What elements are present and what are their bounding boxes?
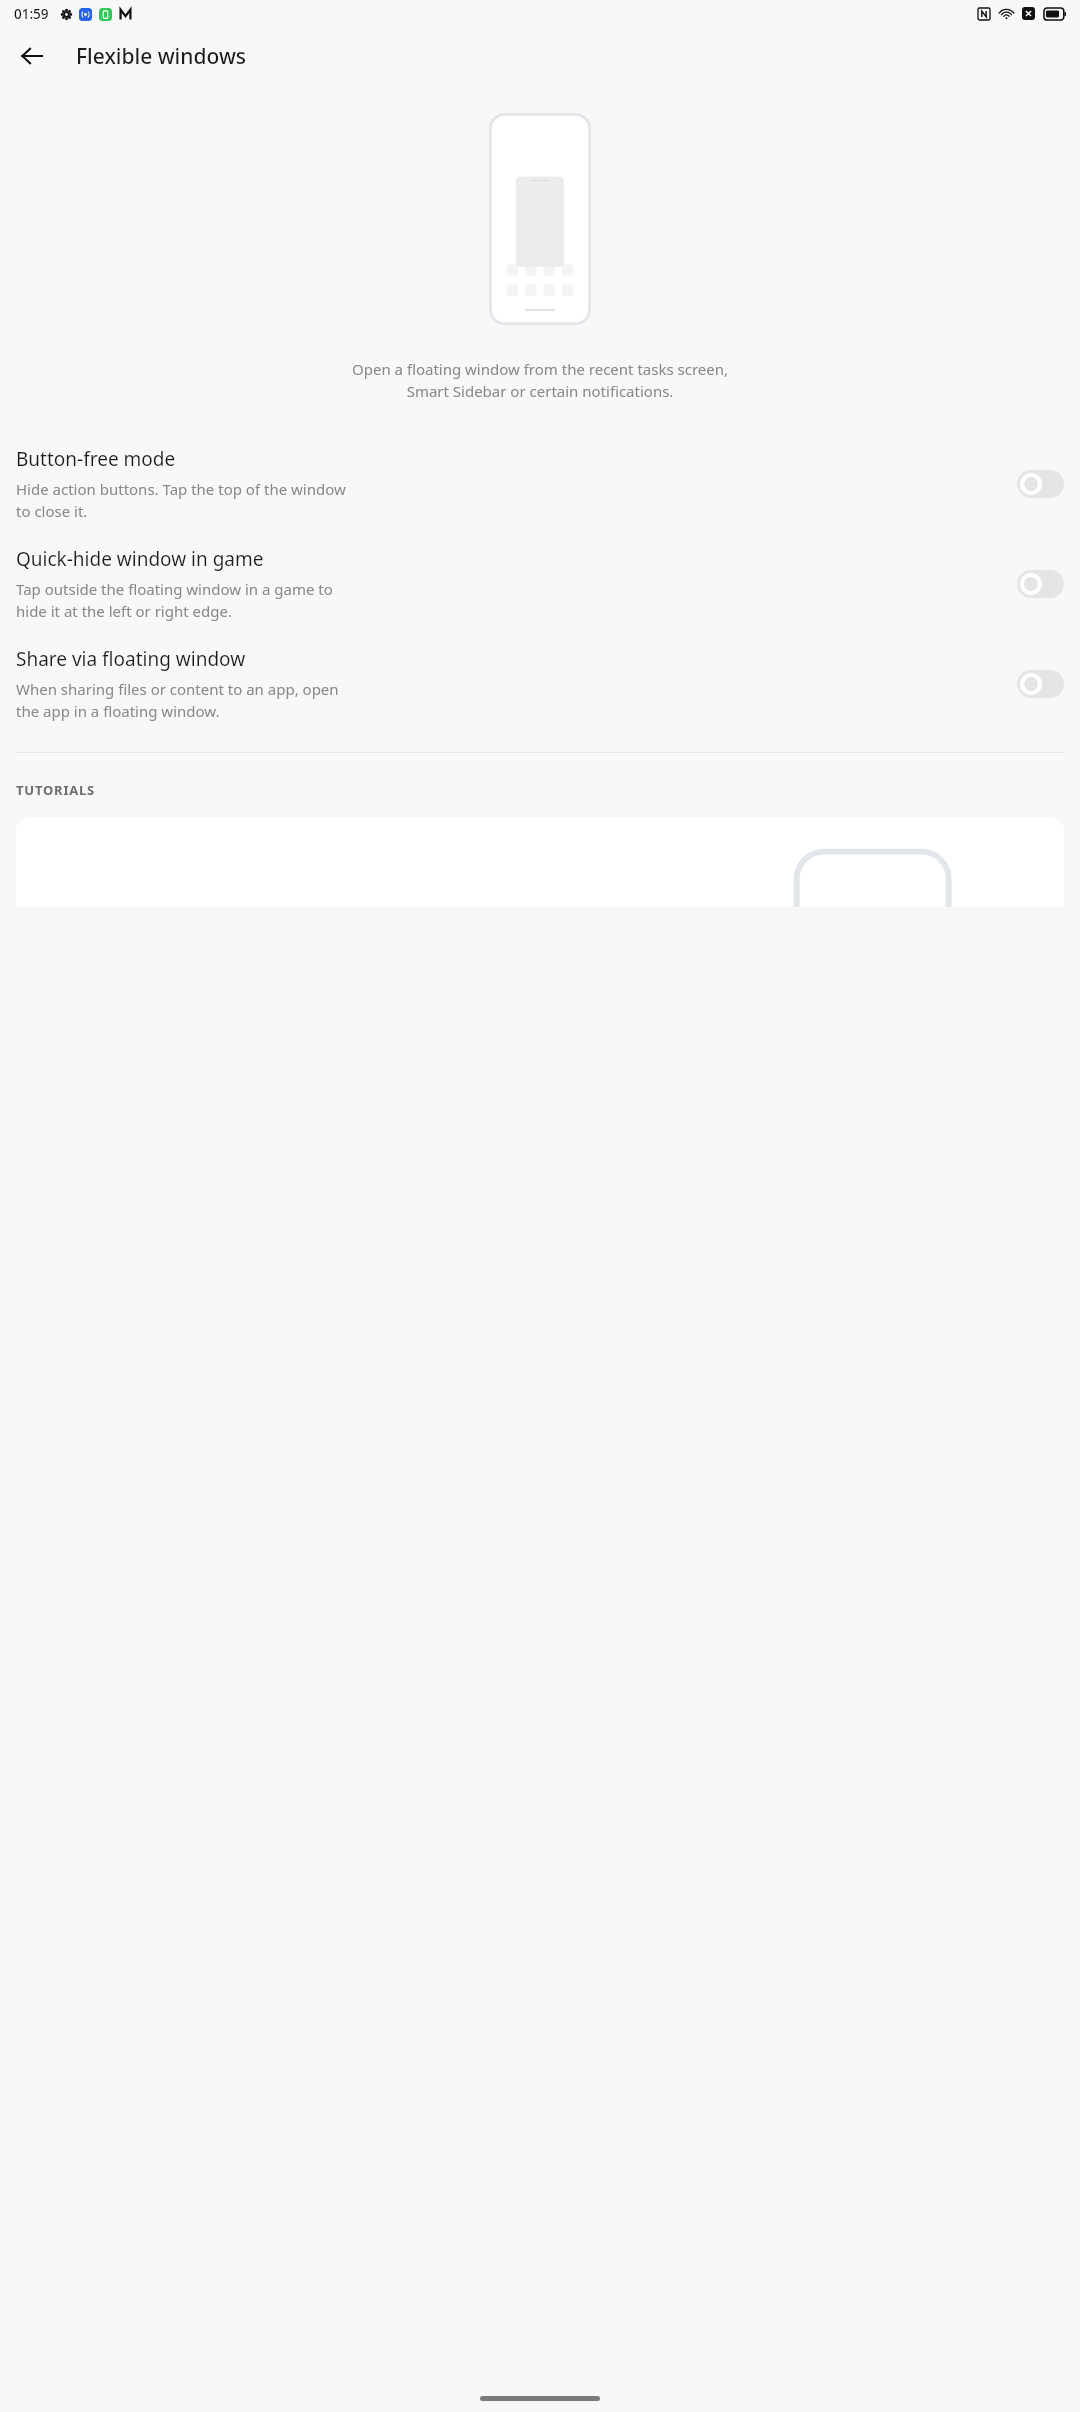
- staticText: Flexible windows: [76, 42, 247, 71]
- staticText: Button-free mode: [16, 446, 176, 472]
- staticText: Tap outside the floating window in a gam…: [16, 579, 333, 622]
- staticText: When sharing files or content to an app,…: [16, 679, 339, 722]
- button[interactable]: [16, 817, 1064, 907]
- staticText: Open a floating window from the recent t…: [20, 359, 1060, 402]
- button[interactable]: Toggle off: [1017, 570, 1064, 598]
- button[interactable]: Toggle off: [1017, 670, 1064, 698]
- staticText: 01:59: [14, 5, 49, 23]
- staticText: Share via floating window: [16, 646, 246, 672]
- staticText: TUTORIALS: [16, 781, 96, 799]
- button[interactable]: Button-free mode: [0, 446, 1080, 522]
- button[interactable]: Share via floating window: [0, 646, 1080, 722]
- staticText: Quick-hide window in game: [16, 546, 264, 572]
- button[interactable]: Back: [8, 32, 56, 80]
- button[interactable]: Toggle off: [1017, 470, 1064, 498]
- button[interactable]: Quick-hide window in game: [0, 546, 1080, 622]
- staticText: Hide action buttons. Tap the top of the …: [16, 479, 346, 522]
